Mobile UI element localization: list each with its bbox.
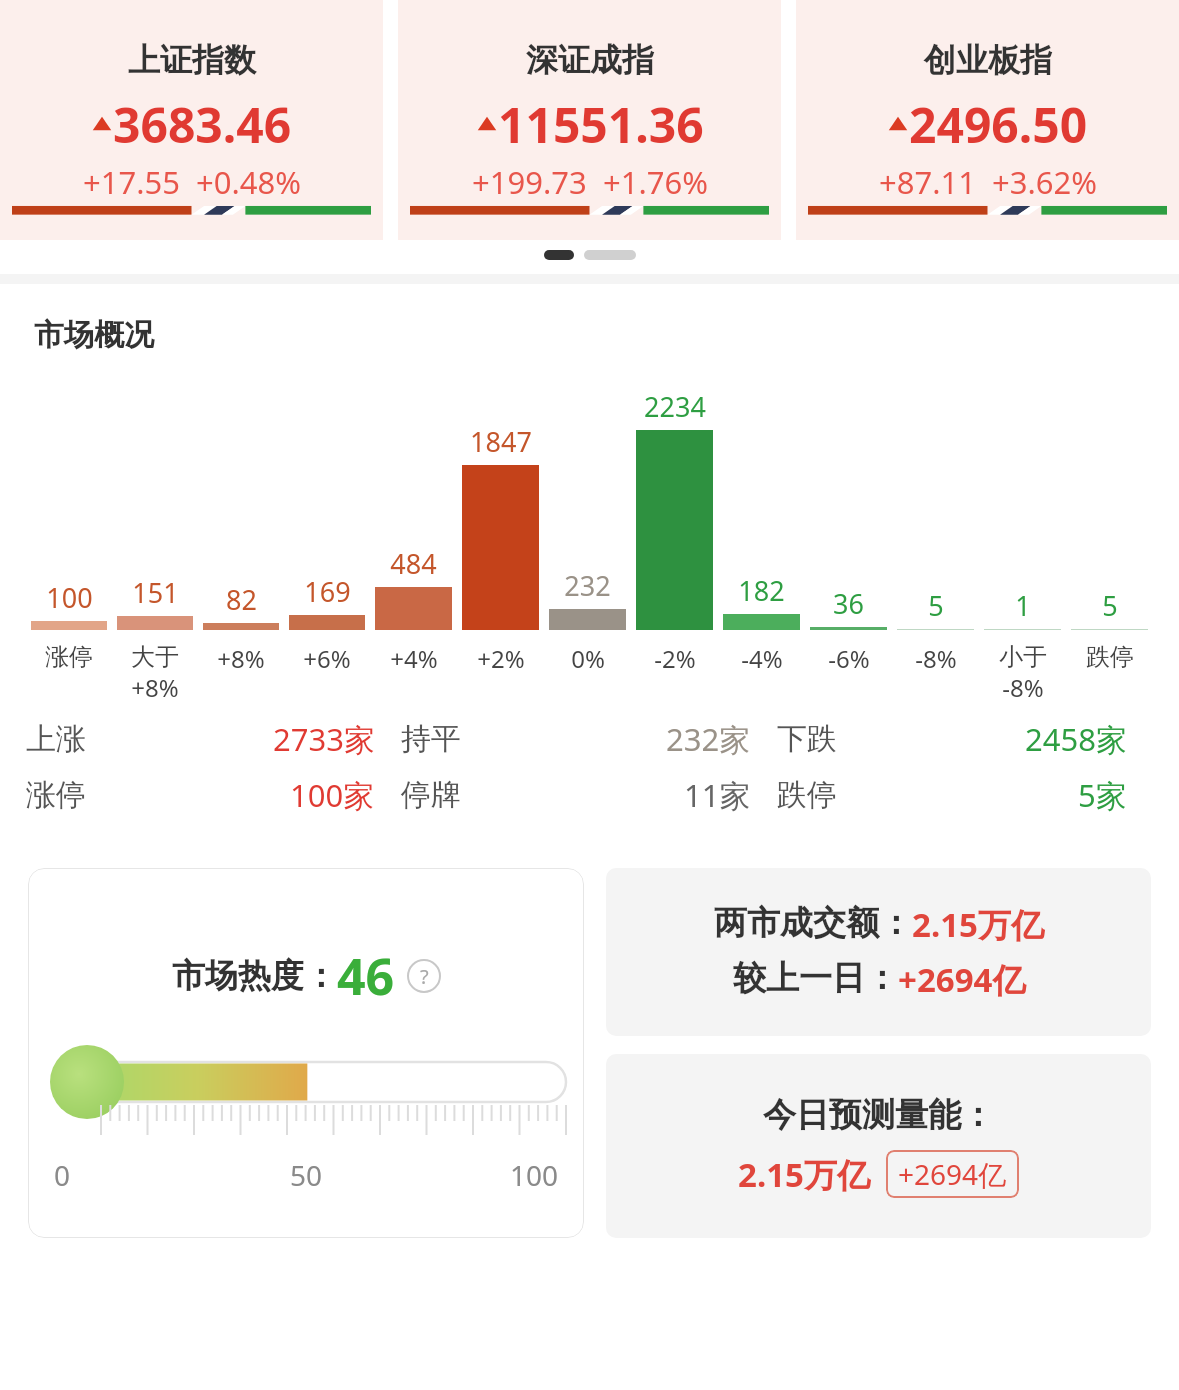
button[interactable]: 上证指数: [0, 0, 383, 240]
staticText: 上证指数: [128, 40, 256, 80]
staticText: 82: [226, 581, 257, 618]
staticText: ?: [420, 963, 429, 990]
staticText: +17.55: [83, 161, 180, 203]
button[interactable]: 持平: [401, 718, 777, 760]
staticText: 232: [564, 567, 611, 604]
button[interactable]: 深证成指: [398, 0, 781, 240]
staticText: +1.76%: [603, 161, 708, 203]
staticText: 100: [46, 579, 93, 616]
staticText: 0: [54, 1156, 222, 1194]
button[interactable]: 182: [718, 380, 805, 630]
staticText: 下跌: [777, 720, 837, 758]
staticText: 484: [390, 545, 437, 582]
staticText: 0%: [571, 642, 605, 675]
button[interactable]: 上涨: [26, 718, 401, 760]
staticText: -8%: [915, 642, 957, 675]
button[interactable]: 涨停: [26, 774, 401, 816]
staticText: 涨停: [45, 642, 93, 672]
button[interactable]: 484: [370, 380, 457, 630]
staticText: +2694亿: [898, 1155, 1007, 1193]
staticText: 2.15万亿: [912, 902, 1044, 947]
staticText: +87.11: [879, 161, 976, 203]
staticText: 上涨: [26, 720, 86, 758]
button[interactable]: 232: [544, 380, 631, 630]
staticText: 市场概况: [34, 316, 154, 354]
staticText: 46: [337, 942, 395, 1010]
button[interactable]: 2234: [631, 380, 718, 630]
staticText: -2%: [654, 642, 696, 675]
button[interactable]: 100: [26, 380, 112, 630]
staticText: 两市成交额：: [714, 902, 912, 944]
button[interactable]: 5: [1066, 380, 1153, 630]
staticText: 11家: [684, 774, 751, 816]
staticText: 持平: [401, 720, 461, 758]
button[interactable]: 82: [198, 380, 284, 630]
staticText: 11551.36: [498, 92, 704, 157]
button[interactable]: Page 2: [584, 250, 636, 260]
button[interactable]: 今日预测量能：: [606, 1054, 1151, 1238]
button[interactable]: Page 1: [544, 250, 574, 260]
staticText: 3683.46: [113, 92, 292, 157]
staticText: 182: [738, 572, 785, 609]
staticText: 创业板指: [924, 40, 1052, 80]
button[interactable]: 5: [892, 380, 979, 630]
staticText: 100家: [290, 774, 375, 816]
staticText: 151: [132, 574, 179, 611]
staticText: 36: [833, 585, 864, 622]
staticText: 2733家: [273, 718, 375, 760]
staticText: +4%: [390, 642, 438, 675]
staticText: 大于 +8%: [131, 642, 179, 704]
staticText: 50: [222, 1156, 390, 1194]
staticText: 停牌: [401, 776, 461, 814]
staticText: 100: [390, 1156, 558, 1194]
staticText: 169: [304, 573, 351, 610]
staticText: +2%: [477, 642, 525, 675]
staticText: +3.62%: [992, 161, 1097, 203]
staticText: 小于 -8%: [999, 642, 1047, 704]
staticText: 2496.50: [909, 92, 1088, 157]
staticText: 涨停: [26, 776, 86, 814]
staticText: +6%: [303, 642, 351, 675]
button[interactable]: 36: [805, 380, 892, 630]
staticText: 5家: [1078, 774, 1127, 816]
staticText: 5: [928, 587, 944, 624]
button[interactable]: 169: [284, 380, 370, 630]
staticText: +2694亿: [898, 957, 1026, 1002]
staticText: 2458家: [1025, 718, 1127, 760]
staticText: 2.15万亿: [738, 1152, 870, 1197]
button[interactable]: 下跌: [777, 718, 1153, 760]
button[interactable]: Help: [407, 959, 441, 993]
button[interactable]: 市场热度：: [28, 868, 584, 1238]
button[interactable]: 停牌: [401, 774, 777, 816]
staticText: 跌停: [1086, 642, 1134, 672]
staticText: 232家: [666, 718, 751, 760]
staticText: 5: [1102, 587, 1118, 624]
staticText: 1847: [470, 423, 532, 460]
staticText: 2234: [644, 388, 706, 425]
button[interactable]: 两市成交额：: [606, 868, 1151, 1036]
button[interactable]: 1847: [457, 380, 544, 630]
staticText: 深证成指: [526, 40, 654, 80]
button[interactable]: 跌停: [777, 774, 1153, 816]
staticText: 市场热度：: [172, 955, 337, 997]
staticText: 较上一日：: [733, 957, 898, 999]
staticText: +0.48%: [196, 161, 301, 203]
button[interactable]: 1: [979, 380, 1066, 630]
button[interactable]: 151: [112, 380, 198, 630]
button[interactable]: 创业板指: [796, 0, 1179, 240]
staticText: +199.73: [472, 161, 587, 203]
staticText: -6%: [828, 642, 870, 675]
staticText: 1: [1015, 587, 1031, 624]
staticText: +8%: [217, 642, 265, 675]
staticText: 今日预测量能：: [763, 1094, 994, 1136]
staticText: 跌停: [777, 776, 837, 814]
staticText: -4%: [741, 642, 783, 675]
